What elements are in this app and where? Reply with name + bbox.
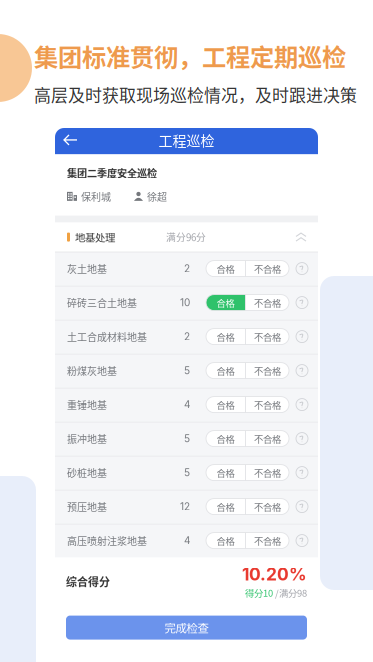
button[interactable]: 说明 <box>296 263 308 275</box>
staticText: 合格 <box>216 330 234 343</box>
button[interactable]: 不合格 <box>246 295 289 311</box>
staticText: 合格 <box>216 262 234 275</box>
staticText: 工程巡检 <box>158 130 214 150</box>
button[interactable]: 不合格 <box>246 431 289 447</box>
button[interactable]: 不合格 <box>246 329 289 345</box>
staticText: 不合格 <box>254 364 281 377</box>
button[interactable]: 说明 <box>296 501 308 513</box>
staticText: 4 <box>184 534 190 547</box>
button[interactable]: 说明 <box>296 535 308 547</box>
staticText: 得分10 <box>245 586 273 599</box>
staticText: 10 <box>180 296 190 309</box>
button[interactable]: 合格 <box>206 261 245 277</box>
staticText: 合格 <box>216 398 234 411</box>
staticText: 合格 <box>216 296 234 309</box>
button[interactable]: 不合格 <box>246 533 289 549</box>
staticText: 不合格 <box>254 262 281 275</box>
staticText: 徐超 <box>147 189 167 204</box>
button[interactable]: 地基处理 <box>55 223 318 252</box>
button[interactable]: 合格 <box>206 295 245 311</box>
staticText: 合格 <box>216 466 234 479</box>
button[interactable]: 说明 <box>296 399 308 411</box>
staticText: 合格 <box>216 500 234 513</box>
staticText: 粉煤灰地基 <box>67 363 117 378</box>
staticText: 不合格 <box>254 296 281 309</box>
button[interactable]: 不合格 <box>246 397 289 413</box>
button[interactable]: 合格 <box>206 465 245 481</box>
button[interactable]: 不合格 <box>246 363 289 379</box>
button[interactable]: 返回 <box>55 125 86 154</box>
staticText: 砂桩地基 <box>67 465 107 480</box>
staticText: 12 <box>180 500 190 513</box>
button[interactable]: 不合格 <box>246 465 289 481</box>
staticText: 不合格 <box>254 432 281 445</box>
staticText: /满分98 <box>273 586 307 599</box>
staticText: 高压喷射注浆地基 <box>67 533 147 548</box>
staticText: 满分96分 <box>166 230 206 244</box>
button[interactable]: 合格 <box>206 499 245 515</box>
button[interactable]: 合格 <box>206 431 245 447</box>
staticText: 2 <box>184 330 190 343</box>
button[interactable]: 说明 <box>296 433 308 445</box>
staticText: 5 <box>184 466 190 479</box>
staticText: 保利城 <box>81 189 111 204</box>
staticText: 不合格 <box>254 534 281 547</box>
staticText: 合格 <box>216 534 234 547</box>
staticText: 不合格 <box>254 466 281 479</box>
staticText: 集团二季度安全巡检 <box>67 165 157 180</box>
staticText: 4 <box>184 398 190 411</box>
staticText: 灰土地基 <box>67 261 107 276</box>
button[interactable]: 合格 <box>206 533 245 549</box>
staticText: 5 <box>184 364 190 377</box>
staticText: 不合格 <box>254 398 281 411</box>
button[interactable]: 不合格 <box>246 499 289 515</box>
staticText: 2 <box>184 262 190 275</box>
staticText: 地基处理 <box>75 229 115 245</box>
staticText: 重锤地基 <box>67 397 107 412</box>
staticText: 预压地基 <box>67 499 107 514</box>
staticText: 不合格 <box>254 330 281 343</box>
button[interactable]: 完成检查 <box>66 616 307 640</box>
button[interactable]: 不合格 <box>246 261 289 277</box>
staticText: 10.20% <box>242 564 307 585</box>
staticText: 综合得分 <box>66 574 110 589</box>
button[interactable]: 说明 <box>296 365 308 377</box>
staticText: 不合格 <box>254 500 281 513</box>
button[interactable]: 合格 <box>206 329 245 345</box>
button[interactable]: 说明 <box>296 467 308 479</box>
staticText: 合格 <box>216 364 234 377</box>
staticText: 5 <box>184 432 190 445</box>
staticText: 碎砖三合土地基 <box>67 295 137 310</box>
staticText: 集团标准贯彻，工程定期巡检 <box>34 38 346 73</box>
button[interactable]: 合格 <box>206 397 245 413</box>
button[interactable]: 说明 <box>296 297 308 309</box>
staticText: 振冲地基 <box>67 431 107 446</box>
staticText: 土工合成材料地基 <box>67 329 147 344</box>
staticText: 完成检查 <box>164 619 208 636</box>
button[interactable]: 合格 <box>206 363 245 379</box>
staticText: 合格 <box>216 432 234 445</box>
staticText: 高层及时获取现场巡检情况，及时跟进决策 <box>34 82 357 107</box>
button[interactable]: 说明 <box>296 331 308 343</box>
